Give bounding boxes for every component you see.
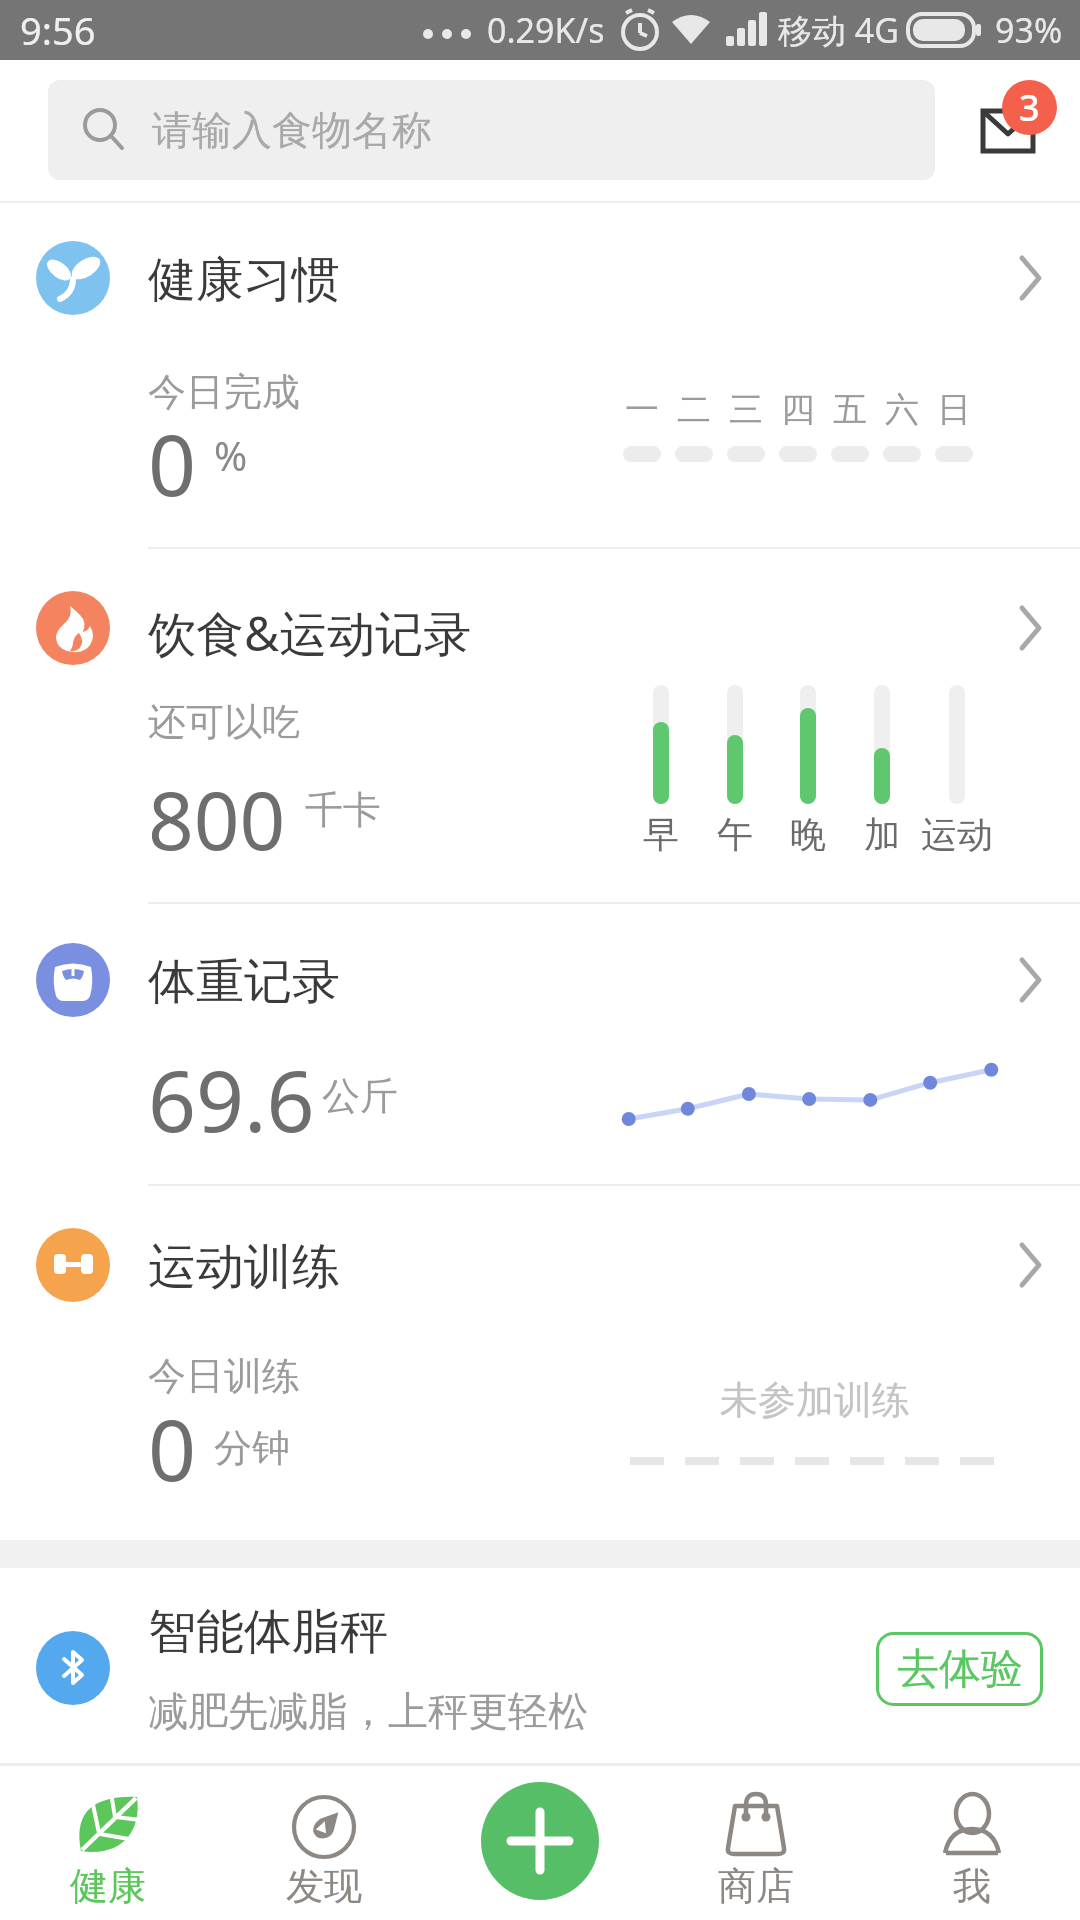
staticText: 三: [729, 388, 763, 424]
staticText: 去体验: [897, 1643, 1023, 1696]
staticText: 请输入食物名称: [152, 105, 432, 155]
staticText: 0.29K/s: [487, 7, 605, 53]
staticText: 千卡: [305, 786, 381, 830]
staticText: 健康: [70, 1862, 146, 1906]
staticText: 今日完成: [148, 368, 300, 408]
staticText: 800: [148, 764, 286, 844]
staticText: 饮食&运动记录: [148, 600, 472, 656]
staticText: 发现: [286, 1862, 362, 1906]
staticText: 一: [625, 388, 659, 424]
staticText: 早: [643, 812, 679, 850]
staticText: 四: [781, 388, 815, 424]
staticText: 五: [833, 388, 867, 424]
staticText: 3: [1019, 83, 1040, 132]
staticText: 93%: [995, 7, 1063, 53]
staticText: 加: [864, 812, 900, 850]
staticText: 二: [677, 388, 711, 424]
staticText: 商店: [718, 1862, 794, 1906]
staticText: 今日训练: [148, 1352, 300, 1392]
staticText: 分钟: [214, 1424, 290, 1468]
staticText: 0: [148, 406, 197, 490]
staticText: 日: [937, 388, 971, 424]
staticText: 未参加训练: [720, 1376, 910, 1420]
staticText: 体重记录: [148, 952, 340, 1008]
staticText: 0: [148, 1391, 197, 1475]
staticText: 移动 4G: [778, 7, 900, 53]
staticText: 减肥先减脂，上秤更轻松: [148, 1686, 588, 1734]
staticText: 健康习惯: [148, 250, 340, 306]
staticText: 69.6: [148, 1042, 315, 1126]
staticText: 午: [717, 812, 753, 850]
staticText: 晚: [790, 812, 826, 850]
staticText: 智能体脂秤: [148, 1602, 388, 1658]
staticText: 还可以吃: [148, 698, 300, 738]
staticText: 运动训练: [148, 1237, 340, 1293]
staticText: 我: [953, 1862, 991, 1906]
staticText: 公斤: [322, 1072, 398, 1116]
staticText: 运动: [921, 812, 993, 850]
staticText: 9:56: [20, 4, 96, 56]
staticText: 六: [885, 388, 919, 424]
staticText: %: [214, 428, 248, 472]
